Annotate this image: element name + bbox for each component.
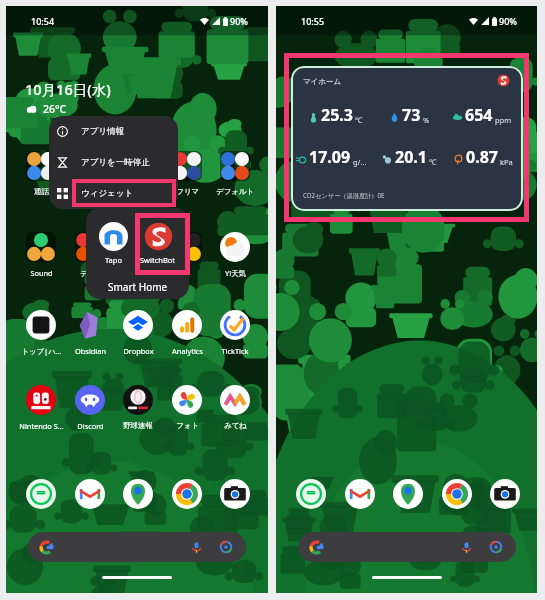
staticText: みてね xyxy=(224,421,247,430)
staticText: 通話 xyxy=(34,187,49,196)
staticText: ℃ xyxy=(429,157,437,167)
button[interactable] xyxy=(114,151,162,187)
button[interactable]: Nintendo S… xyxy=(17,385,65,431)
staticText: o xyxy=(185,268,190,278)
button[interactable]: Y!天気 xyxy=(211,232,259,278)
staticText: Y!天気 xyxy=(225,268,246,278)
button[interactable]: マイホーム xyxy=(291,66,523,211)
staticText: SwitchBot xyxy=(140,255,176,265)
staticText: 90% xyxy=(230,15,248,27)
staticText: 26°C xyxy=(43,102,67,116)
other: Voice search xyxy=(460,541,473,554)
staticText: Discord xyxy=(77,421,104,431)
button[interactable] xyxy=(287,479,335,515)
staticText: アプリ情報 xyxy=(81,126,125,137)
button[interactable]: Voice search xyxy=(298,532,516,562)
other: Google Lens xyxy=(489,540,503,554)
other: Google Lens xyxy=(219,540,233,554)
staticText: 野球速報 xyxy=(123,421,153,430)
staticText: Tapo xyxy=(105,255,122,265)
staticText: 10月16日(水) xyxy=(25,79,111,99)
button[interactable]: Voice search xyxy=(28,532,246,562)
staticText: 25.3 xyxy=(321,104,353,126)
button[interactable] xyxy=(66,151,114,187)
button[interactable]: Analytics xyxy=(163,310,211,356)
staticText: 654 xyxy=(465,104,493,126)
staticText: CO2センサー（温湿度計）0E xyxy=(303,191,385,199)
button[interactable]: 通話 xyxy=(17,151,65,196)
staticText: Obsidian xyxy=(75,346,106,356)
staticText: フリマ xyxy=(176,187,199,196)
button[interactable]: みてね xyxy=(211,385,259,430)
button[interactable]: デリ… xyxy=(66,232,114,278)
staticText: 0.87 xyxy=(466,146,498,168)
button[interactable]: デフォルト xyxy=(211,151,259,196)
button[interactable]: Dropbox xyxy=(114,310,162,356)
staticText: Analytics xyxy=(172,346,203,356)
staticText: アプリを一時停止 xyxy=(81,157,150,168)
staticText: ppm xyxy=(495,115,512,125)
button[interactable]: Sound xyxy=(17,232,65,278)
button[interactable] xyxy=(114,479,162,515)
button[interactable]: 野球速報 xyxy=(114,385,162,430)
staticText: 17.09 xyxy=(309,146,351,168)
button[interactable]: ウィジェット xyxy=(49,178,178,209)
staticText: 20.1 xyxy=(395,146,427,168)
button[interactable]: o xyxy=(163,232,211,278)
button[interactable]: アプリを一時停止 xyxy=(49,147,178,178)
button[interactable]: アプリ情報 xyxy=(49,116,178,147)
staticText: Nintendo S… xyxy=(19,421,64,431)
button[interactable] xyxy=(163,479,211,515)
staticText: ℃ xyxy=(355,115,363,125)
button[interactable]: Obsidian xyxy=(66,310,114,356)
staticText: 73 xyxy=(402,104,421,126)
staticText: g/… xyxy=(353,157,367,167)
button[interactable] xyxy=(17,479,65,515)
staticText: TickTick xyxy=(221,346,249,356)
button[interactable]: フリマ xyxy=(163,151,211,196)
staticText: Sound xyxy=(30,268,53,278)
staticText: マイホーム xyxy=(303,77,342,86)
button[interactable]: SwitchBot xyxy=(140,222,176,265)
button[interactable]: フォト xyxy=(163,385,211,430)
button[interactable]: TickTick xyxy=(211,310,259,356)
staticText: 10:54 xyxy=(31,15,55,27)
staticText: デフォルト xyxy=(216,187,254,196)
button[interactable] xyxy=(433,479,481,515)
staticText: トップ|ハ… xyxy=(21,346,62,356)
other: Voice search xyxy=(190,541,203,554)
staticText: Smart Home xyxy=(108,280,168,294)
button[interactable] xyxy=(211,479,259,515)
staticText: ウィジェット xyxy=(81,188,134,199)
button[interactable]: Discord xyxy=(66,385,114,431)
button[interactable] xyxy=(384,479,432,515)
button[interactable]: トップ|ハ… xyxy=(17,310,65,356)
staticText: フォト xyxy=(176,421,199,430)
button[interactable] xyxy=(336,479,384,515)
staticText: 10:55 xyxy=(301,15,325,27)
staticText: % xyxy=(423,115,430,125)
staticText: デリ… xyxy=(80,268,101,278)
button[interactable] xyxy=(481,479,529,515)
staticText: 90% xyxy=(499,15,517,27)
button[interactable]: Tapo xyxy=(99,222,128,265)
button[interactable] xyxy=(66,479,114,515)
button[interactable] xyxy=(114,232,162,268)
staticText: kPa xyxy=(500,157,513,167)
staticText: Dropbox xyxy=(123,346,154,356)
